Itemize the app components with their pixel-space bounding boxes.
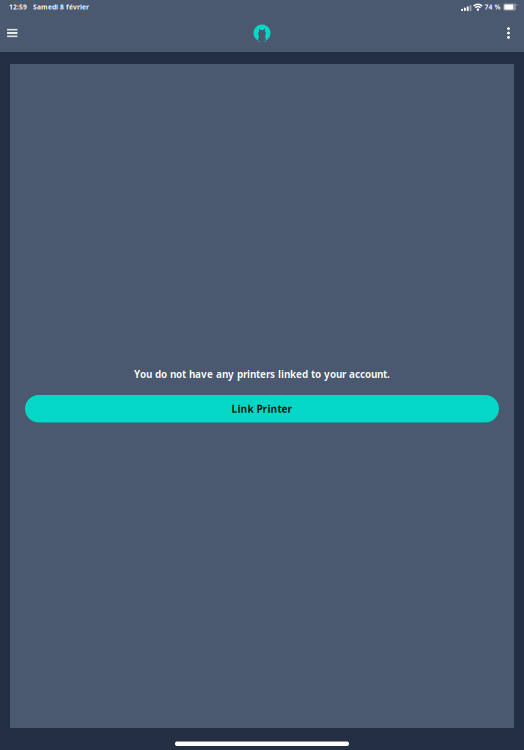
staticText: You do not have any printers linked to y…: [134, 367, 390, 381]
button[interactable]: Link Printer: [25, 395, 499, 422]
button[interactable]: Menu: [0, 18, 24, 48]
button[interactable]: More options: [493, 18, 524, 48]
staticText: 74 %: [484, 3, 500, 11]
staticText: Samedi 8 février: [33, 3, 89, 11]
staticText: Link Printer: [231, 402, 292, 416]
staticText: 12:59: [9, 3, 27, 11]
